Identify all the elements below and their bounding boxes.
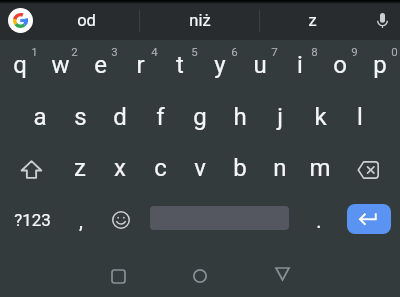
button[interactable]: z [259,0,365,41]
staticText: 3 [111,45,118,58]
staticText: l [357,103,363,131]
button[interactable]: c [140,142,180,194]
staticText: 1 [31,45,38,58]
button[interactable]: h [220,91,260,143]
button[interactable]: Enter [340,194,398,246]
button[interactable]: od [37,0,135,41]
button[interactable]: j [260,91,300,143]
staticText: a [33,103,47,131]
button[interactable]: z [60,142,100,194]
staticText: t [176,51,184,79]
staticText: p [373,51,387,79]
staticText: r [136,51,145,79]
staticText: 2 [71,45,78,58]
staticText: i [297,51,303,79]
button[interactable]: v [180,142,220,194]
button[interactable]: Voice input [364,0,400,41]
button[interactable]: ?123 [0,194,64,246]
staticText: n [273,154,287,182]
staticText: c [154,154,167,182]
button[interactable]: niż [140,0,259,41]
button[interactable]: i [280,39,320,91]
button[interactable]: w [40,39,80,91]
button[interactable]: g [180,91,220,143]
button[interactable]: y [200,39,240,91]
staticText: 7 [271,45,278,58]
staticText: ?123 [14,210,51,230]
button[interactable]: l [340,91,380,143]
staticText: x [114,154,126,182]
button[interactable]: q [0,39,40,91]
button[interactable]: Space [142,194,297,246]
button[interactable]: Emoji [101,194,141,246]
button[interactable]: Google search [8,8,33,33]
button[interactable]: o [320,39,360,91]
staticText: g [193,103,207,131]
button[interactable]: s [60,91,100,143]
staticText: y [214,51,226,79]
button[interactable]: , [61,194,101,246]
staticText: z [74,154,86,182]
staticText: z [308,11,317,30]
button[interactable]: b [220,142,260,194]
staticText: h [233,103,247,131]
button[interactable]: x [100,142,140,194]
staticText: v [194,154,206,182]
staticText: 0 [391,45,398,58]
button[interactable]: n [260,142,300,194]
button[interactable]: e [80,39,120,91]
staticText: od [77,11,96,30]
staticText: 9 [351,45,358,58]
staticText: , [79,209,83,232]
button[interactable]: t [160,39,200,91]
button[interactable]: Backspace [336,142,400,194]
staticText: 4 [151,45,158,58]
button[interactable]: Home [170,254,230,297]
staticText: b [233,154,247,182]
staticText: u [253,51,267,79]
staticText: f [156,103,165,131]
staticText: w [51,51,70,79]
staticText: 8 [311,45,318,58]
button[interactable]: a [20,91,60,143]
button[interactable]: d [100,91,140,143]
staticText: m [309,154,331,182]
staticText: k [314,103,327,131]
button[interactable]: Shift [0,142,62,194]
staticText: q [13,51,27,79]
button[interactable]: m [300,142,340,194]
staticText: e [94,51,107,79]
button[interactable]: p [360,39,400,91]
button[interactable]: Recent apps [88,254,148,297]
button[interactable]: Back [252,252,312,296]
button[interactable]: r [120,39,160,91]
staticText: 5 [191,45,198,58]
button[interactable]: k [300,91,340,143]
button[interactable]: . [299,194,339,246]
staticText: niż [189,11,211,30]
staticText: . [316,209,322,232]
staticText: s [74,103,87,131]
button[interactable]: f [140,91,180,143]
staticText: j [277,103,283,131]
button[interactable]: u [240,39,280,91]
staticText: d [113,103,127,131]
staticText: o [333,51,347,79]
staticText: 6 [231,45,238,58]
